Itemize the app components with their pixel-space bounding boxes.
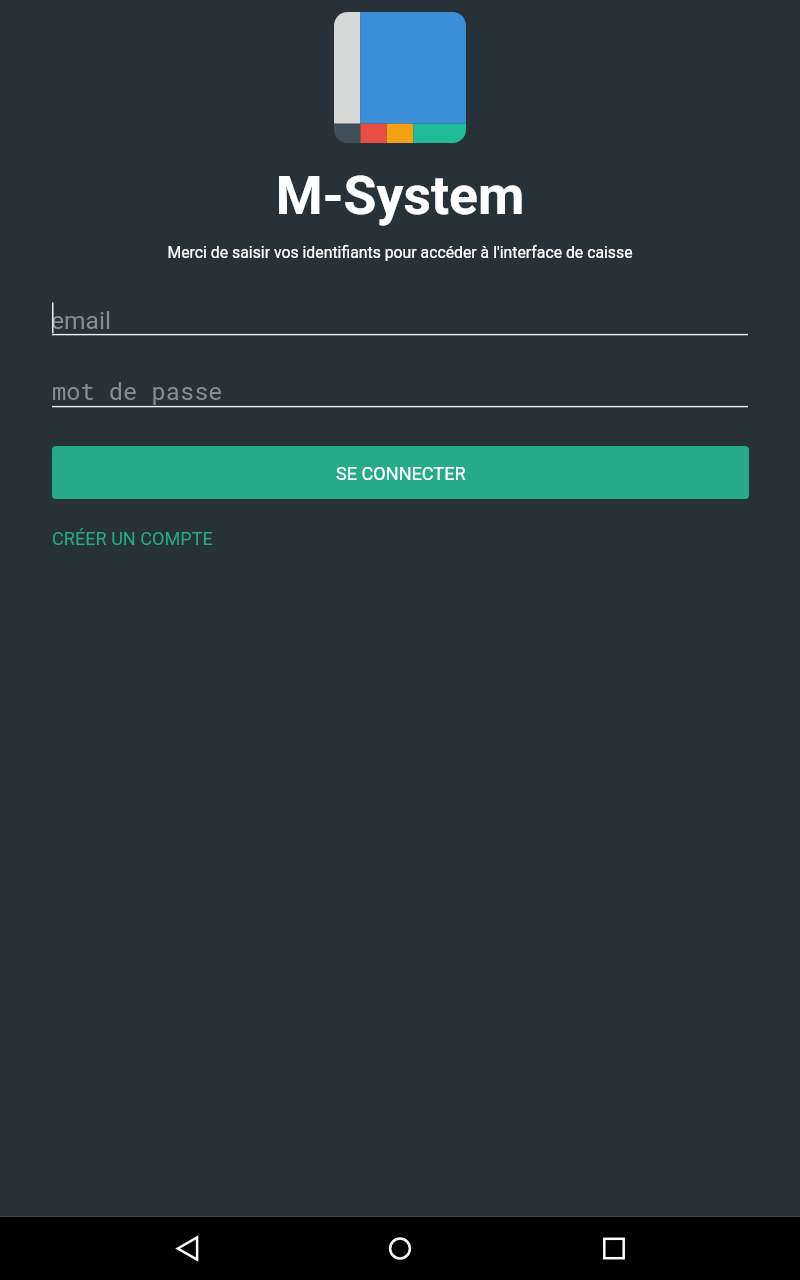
staticText: Merci de saisir vos identifiants pour ac… xyxy=(0,243,800,262)
button[interactable]: Recent apps xyxy=(582,1217,646,1280)
staticText: SE CONNECTER xyxy=(336,463,466,484)
staticText: email xyxy=(51,306,111,335)
button[interactable]: CRÉER UN COMPTE xyxy=(44,521,220,555)
button[interactable]: mot de passe xyxy=(52,370,748,408)
button[interactable]: Home xyxy=(368,1217,432,1280)
staticText: M-System xyxy=(0,164,800,227)
button[interactable]: Back xyxy=(155,1217,219,1280)
button[interactable]: email xyxy=(52,298,748,336)
staticText: mot de passe xyxy=(52,375,223,406)
button[interactable]: SE CONNECTER xyxy=(52,446,749,499)
staticText: CRÉER UN COMPTE xyxy=(52,528,213,549)
